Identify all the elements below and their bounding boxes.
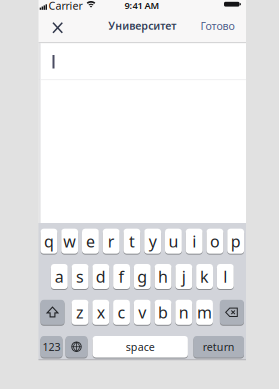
staticText: e [86,231,95,252]
button[interactable]: return [193,336,244,357]
button[interactable]: r [103,229,120,254]
button[interactable]: b [155,300,171,325]
button[interactable]: j [175,264,192,289]
button[interactable]: space [93,336,188,357]
staticText: n [179,302,189,323]
staticText: h [158,266,168,287]
button[interactable]: i [186,229,203,254]
staticText: g [137,266,147,287]
staticText: m [197,302,212,323]
button[interactable]: w [61,229,78,254]
button[interactable]: m [196,300,213,325]
staticText: Carrier [48,0,82,13]
staticText: q [44,231,54,252]
button[interactable]: Close [44,13,72,41]
button[interactable]: k [196,264,213,289]
button[interactable]: h [155,264,172,289]
button[interactable]: c [113,300,130,325]
button[interactable]: t [123,229,140,254]
staticText: k [200,266,209,287]
staticText: space [126,340,155,354]
button[interactable]: l [217,264,234,289]
button[interactable]: x [92,300,109,325]
button[interactable]: p [227,229,244,254]
staticText: d [96,266,106,287]
staticText: return [203,340,235,354]
button[interactable]: d [92,264,109,289]
staticText: z [76,302,84,323]
button[interactable]: q [40,229,57,254]
button[interactable]: u [165,229,182,254]
staticText: 9:41 AM [124,0,159,12]
button[interactable]: g [134,264,151,289]
staticText: j [182,266,186,287]
staticText: Университет [108,18,176,33]
staticText: r [108,231,115,252]
staticText: o [210,231,220,252]
button[interactable]: Next keyboard [65,336,87,357]
staticText: i [192,231,196,252]
staticText: s [76,266,84,287]
staticText: t [129,231,135,252]
staticText: p [231,231,241,252]
staticText: b [158,302,168,323]
button[interactable]: z [72,300,88,325]
staticText: y [149,231,157,252]
button[interactable]: e [82,229,99,254]
button[interactable]: n [175,300,192,325]
button[interactable]: f [113,264,130,289]
button[interactable]: Готово [184,17,234,35]
button[interactable]: y [144,229,161,254]
staticText: x [97,302,105,323]
staticText: c [117,302,125,323]
staticText: Готово [200,19,234,33]
button[interactable]: v [134,300,151,325]
button[interactable]: Delete [220,300,244,325]
staticText: f [119,266,125,287]
button[interactable]: o [206,229,223,254]
staticText: l [223,266,227,287]
button[interactable]: Shift [40,300,64,325]
button[interactable]: Numbers [40,336,62,357]
staticText: w [63,231,76,252]
button[interactable]: a [51,264,68,289]
staticText: a [55,266,64,287]
staticText: v [138,302,146,323]
staticText: 123 [42,340,60,354]
button[interactable]: s [72,264,89,289]
staticText: u [168,231,178,252]
